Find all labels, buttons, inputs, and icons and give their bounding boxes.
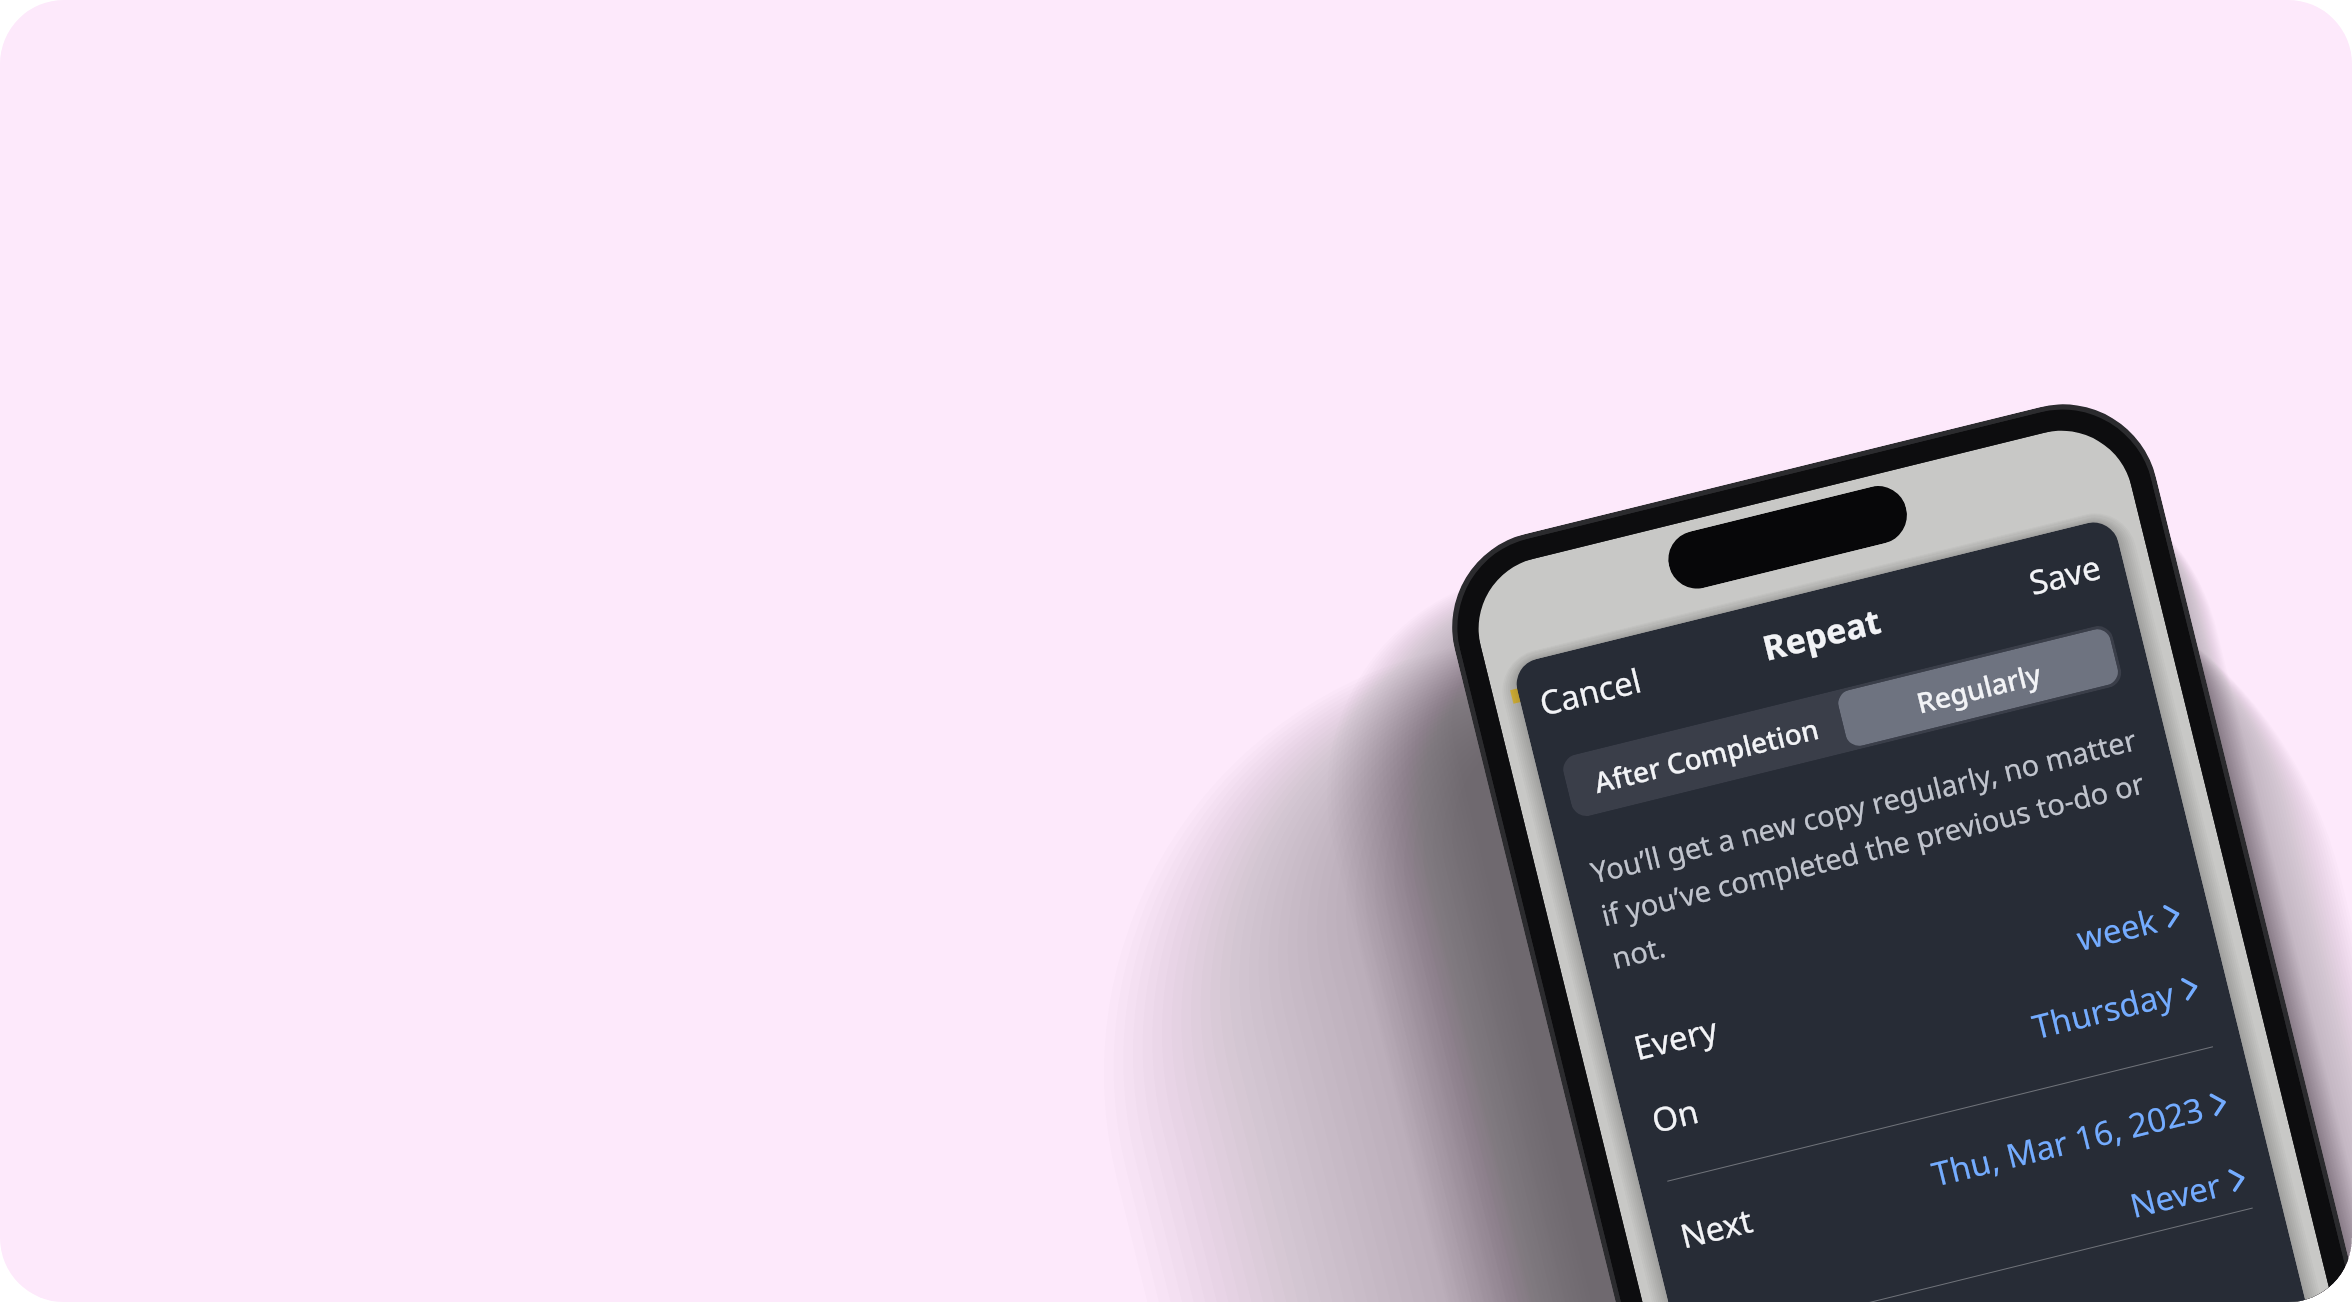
button[interactable]: Every [1629, 891, 2186, 1070]
button[interactable]: After Completion [1563, 693, 1849, 816]
staticText: On [1647, 1088, 1703, 1143]
button[interactable]: On [1647, 964, 2203, 1143]
button[interactable]: Save [2024, 544, 2106, 605]
button[interactable]: Next [1675, 1079, 2232, 1258]
staticText: Cancel [1535, 657, 1646, 726]
button[interactable]: Never [1694, 1155, 2251, 1302]
staticText: After Completion [1590, 709, 1823, 801]
staticText: Repeat [1758, 597, 1885, 671]
button[interactable]: Cancel [1535, 657, 1646, 726]
button[interactable]: Regularly [1835, 626, 2121, 749]
staticText: Next [1676, 1197, 1757, 1258]
staticText: Thursday [2028, 971, 2179, 1049]
staticText: Save [2024, 544, 2106, 605]
staticText: Every [1629, 1006, 1722, 1070]
staticText: You’ll get a new copy regularly, no matt… [1586, 716, 2175, 977]
staticText: Thu, Mar 16, 2023 [1927, 1086, 2208, 1196]
staticText: Never [2125, 1162, 2226, 1228]
staticText: week [2072, 898, 2161, 961]
staticText: Regularly [1912, 654, 2045, 722]
